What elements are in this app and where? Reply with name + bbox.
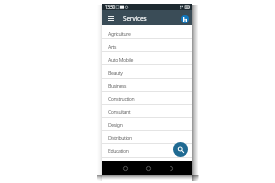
button[interactable]: Business [102,77,192,90]
button[interactable]: Consultant [102,103,192,116]
button[interactable]: Design [102,116,192,129]
button[interactable]: Agriculture [102,25,192,38]
staticText: 13:30 [105,4,115,10]
button[interactable]: Recent apps [166,164,175,173]
staticText: Consultant [108,108,131,115]
staticText: Education [108,147,129,154]
staticText: Agriculture [108,30,131,37]
button[interactable]: Account [181,15,189,23]
button[interactable]: Auto Mobile [102,51,192,64]
button[interactable]: Beauty [102,64,192,77]
button[interactable]: Back [121,164,130,173]
staticText: Arts [108,43,117,50]
staticText: Business [108,82,127,89]
button[interactable]: Construction [102,90,192,103]
button[interactable]: Home [144,164,153,173]
button[interactable]: Distribution [102,129,192,142]
button[interactable]: Search [173,142,188,157]
button[interactable]: Open navigation menu [105,12,116,25]
staticText: Auto Mobile [108,56,133,63]
staticText: Services [123,14,147,23]
button[interactable]: Education [102,142,192,155]
staticText: Construction [108,95,135,102]
staticText: Distribution [108,134,132,141]
staticText: Design [108,121,123,128]
staticText: Beauty [108,69,123,76]
button[interactable]: Arts [102,38,192,51]
